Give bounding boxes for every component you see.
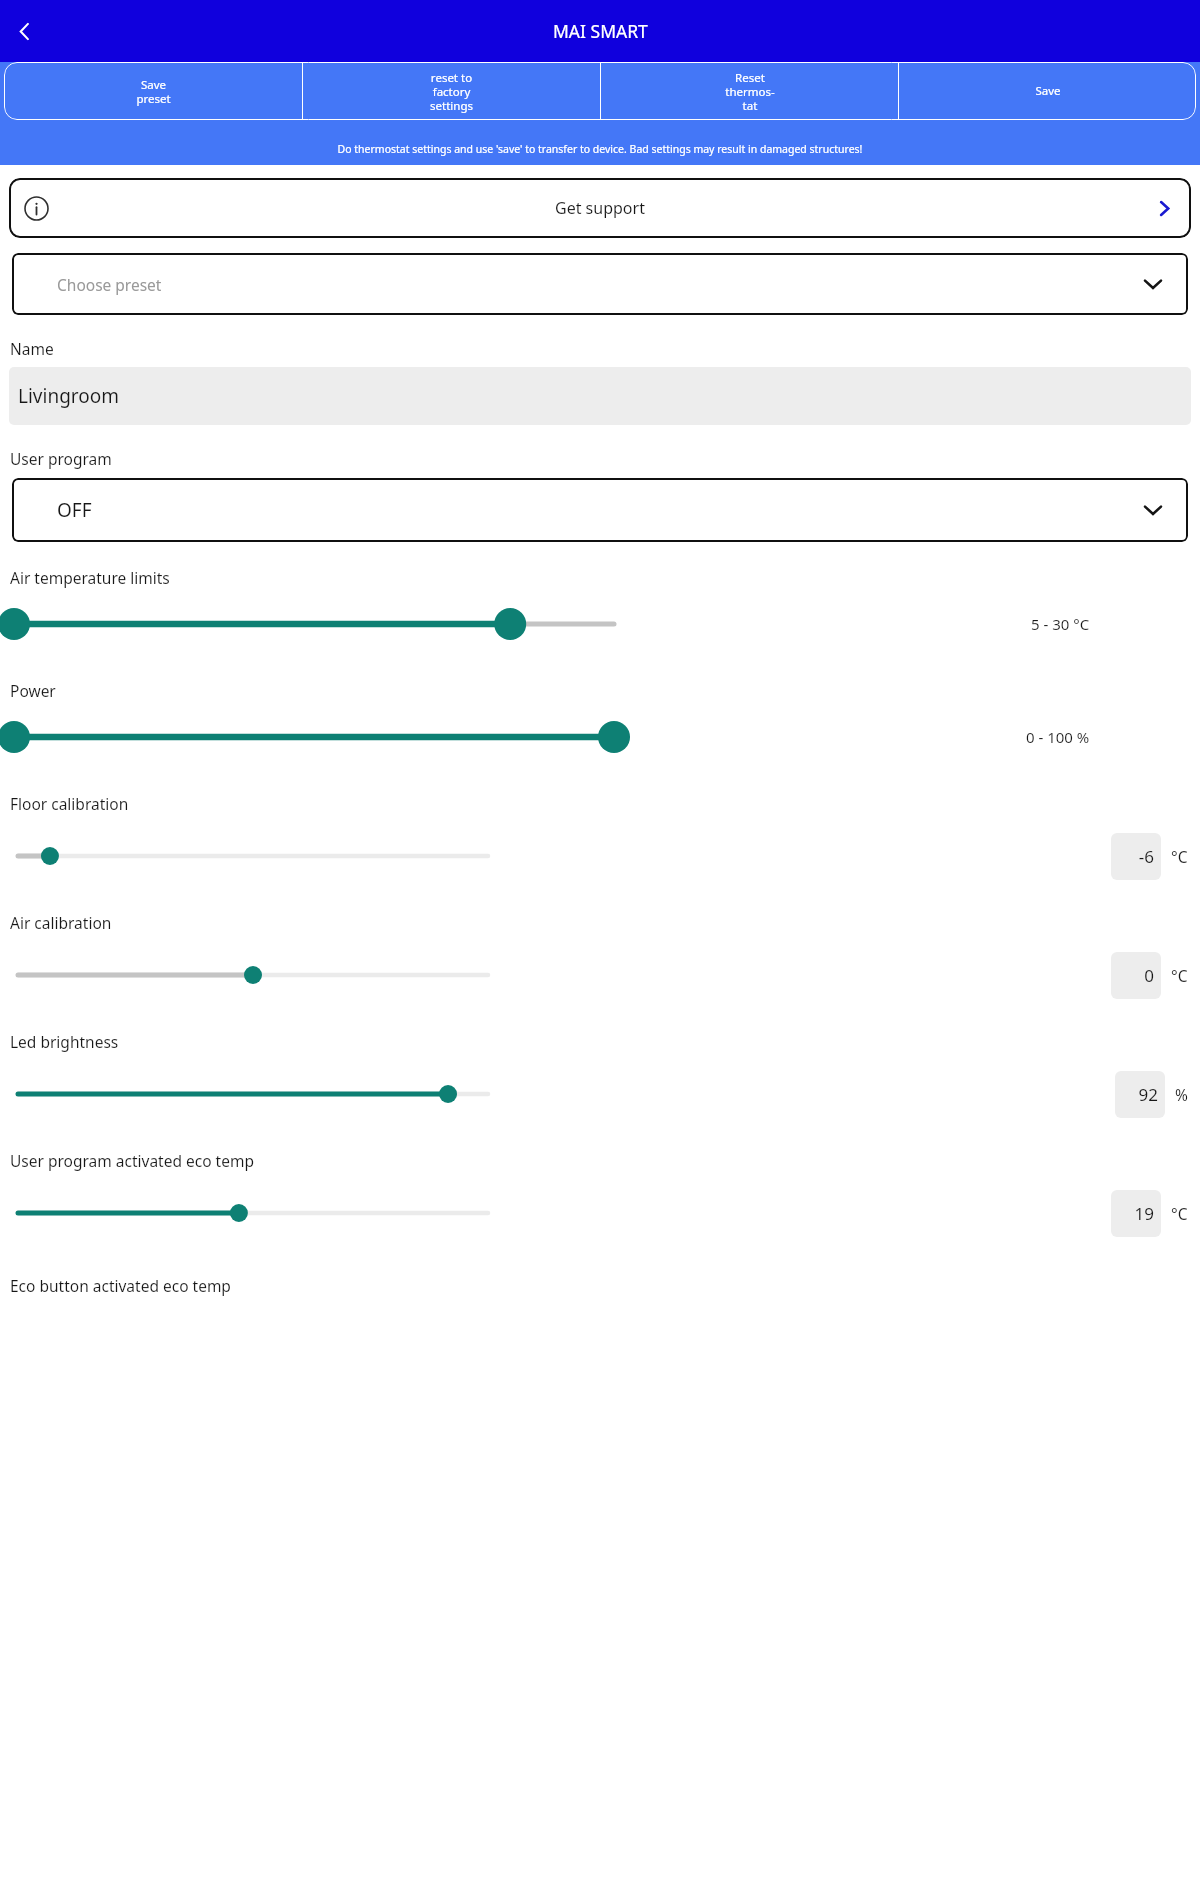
staticText: Choose preset <box>57 274 162 295</box>
staticText: Air temperature limits <box>10 567 170 588</box>
staticText: User program activated eco temp <box>10 1150 254 1171</box>
button[interactable]: 0 - 100 % <box>0 701 1200 773</box>
staticText: Power <box>10 680 56 701</box>
staticText: reset to factory settings <box>430 70 473 113</box>
staticText: 5 - 30 °C <box>1031 614 1090 634</box>
button[interactable]: Get support <box>9 178 1191 238</box>
button[interactable]: Save preset <box>4 62 302 120</box>
staticText: 19 <box>1134 1202 1154 1225</box>
staticText: User program <box>10 448 112 469</box>
staticText: 0 <box>1144 964 1154 987</box>
button[interactable]: 5 - 30 °C <box>0 588 1200 660</box>
button[interactable]: Reset thermos- tat <box>601 62 898 120</box>
staticText: °C <box>1171 1203 1188 1224</box>
staticText: OFF <box>57 497 92 523</box>
staticText: Livingroom <box>18 383 120 409</box>
staticText: Get support <box>555 197 645 219</box>
button[interactable]: 19 <box>0 1171 1200 1255</box>
staticText: Name <box>10 338 54 359</box>
button[interactable]: reset to factory settings <box>303 62 600 120</box>
button[interactable]: 92 <box>0 1052 1200 1136</box>
button[interactable]: 0 <box>0 933 1200 1017</box>
staticText: Reset thermos- tat <box>725 70 775 113</box>
button[interactable]: Choose preset <box>12 253 1188 315</box>
staticText: % <box>1175 1084 1188 1105</box>
staticText: Floor calibration <box>10 793 129 814</box>
button[interactable]: Save <box>899 62 1196 120</box>
button[interactable]: OFF <box>12 478 1188 542</box>
staticText: °C <box>1171 846 1188 867</box>
staticText: Eco button activated eco temp <box>10 1275 231 1296</box>
staticText: -6 <box>1138 845 1154 868</box>
button[interactable]: -6 <box>0 814 1200 898</box>
staticText: Air calibration <box>10 912 112 933</box>
staticText: 92 <box>1138 1083 1158 1106</box>
button[interactable]: Back <box>2 9 46 53</box>
staticText: Save preset <box>136 77 171 106</box>
button[interactable]: Livingroom <box>9 367 1191 425</box>
staticText: 0 - 100 % <box>1026 727 1090 747</box>
staticText: Led brightness <box>10 1031 119 1052</box>
staticText: °C <box>1171 965 1188 986</box>
staticText: MAI SMART <box>553 19 648 43</box>
staticText: Save <box>1035 83 1061 99</box>
staticText: Do thermostat settings and use 'save' to… <box>8 142 1192 156</box>
